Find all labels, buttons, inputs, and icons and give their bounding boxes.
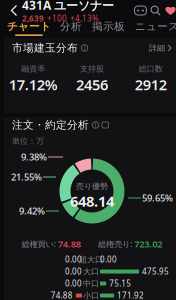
staticText: 75.15 xyxy=(109,278,131,289)
staticText: 9.42% xyxy=(19,205,45,217)
staticText: 21.55% xyxy=(11,171,42,183)
button[interactable]: 掲示板 xyxy=(87,20,130,38)
staticText: 市場建玉分布 xyxy=(12,41,78,54)
staticText: 2,639 xyxy=(22,13,44,24)
staticText: +100 xyxy=(47,13,67,24)
staticText: 9.38% xyxy=(21,151,47,163)
staticText: 分析 xyxy=(60,20,82,33)
staticText: 総権買い: xyxy=(22,239,56,249)
staticText: 超大口 xyxy=(79,255,103,264)
staticText: ニュース xyxy=(135,20,176,33)
staticText: 小口 xyxy=(83,291,99,300)
button[interactable]: ニュース xyxy=(130,20,176,38)
staticText: 74.88 xyxy=(51,290,73,300)
staticText: 431A ユーソナー xyxy=(22,0,114,13)
staticText: 0.00 xyxy=(100,254,117,265)
staticText: 2456 xyxy=(76,75,108,94)
staticText: 売り優勢 xyxy=(76,181,108,191)
button[interactable]: 分析 xyxy=(55,20,87,38)
staticText: 74.88 xyxy=(58,238,81,250)
staticText: 475.95 xyxy=(142,266,169,277)
staticText: i xyxy=(83,44,85,52)
staticText: 17.12% xyxy=(9,75,58,94)
staticText: 融資率 xyxy=(21,64,45,74)
button[interactable]: Back xyxy=(6,0,22,20)
button[interactable]: Search xyxy=(148,1,163,19)
staticText: チャート xyxy=(7,20,51,33)
staticText: 723.02 xyxy=(134,238,162,250)
staticText: 171.92 xyxy=(117,290,144,300)
staticText: +4.13% xyxy=(70,13,99,24)
staticText: 詳細 xyxy=(149,43,165,53)
staticText: 2912 xyxy=(135,75,167,94)
staticText: 支持股 xyxy=(80,64,104,74)
button[interactable]: 詳細 xyxy=(149,43,172,53)
staticText: 総口数 xyxy=(139,64,163,74)
staticText: 大口 xyxy=(83,267,99,276)
staticText: 0.00 xyxy=(65,266,82,277)
button[interactable]: チャート xyxy=(3,20,55,38)
staticText: 648.14 xyxy=(70,191,114,211)
staticText: 中口 xyxy=(83,279,99,288)
staticText: 総権売り: xyxy=(98,239,132,249)
staticText: 59.65% xyxy=(142,192,173,204)
button[interactable]: Board xyxy=(133,1,148,19)
staticText: 注文・約定分析 xyxy=(12,118,89,131)
staticText: 0.00 xyxy=(65,254,82,265)
staticText: 0.00 xyxy=(65,278,82,289)
staticText: 掲示板 xyxy=(92,20,125,33)
button[interactable]: Favorite xyxy=(163,1,176,19)
staticText: i xyxy=(94,121,96,129)
staticText: 単位：万 xyxy=(12,136,44,146)
